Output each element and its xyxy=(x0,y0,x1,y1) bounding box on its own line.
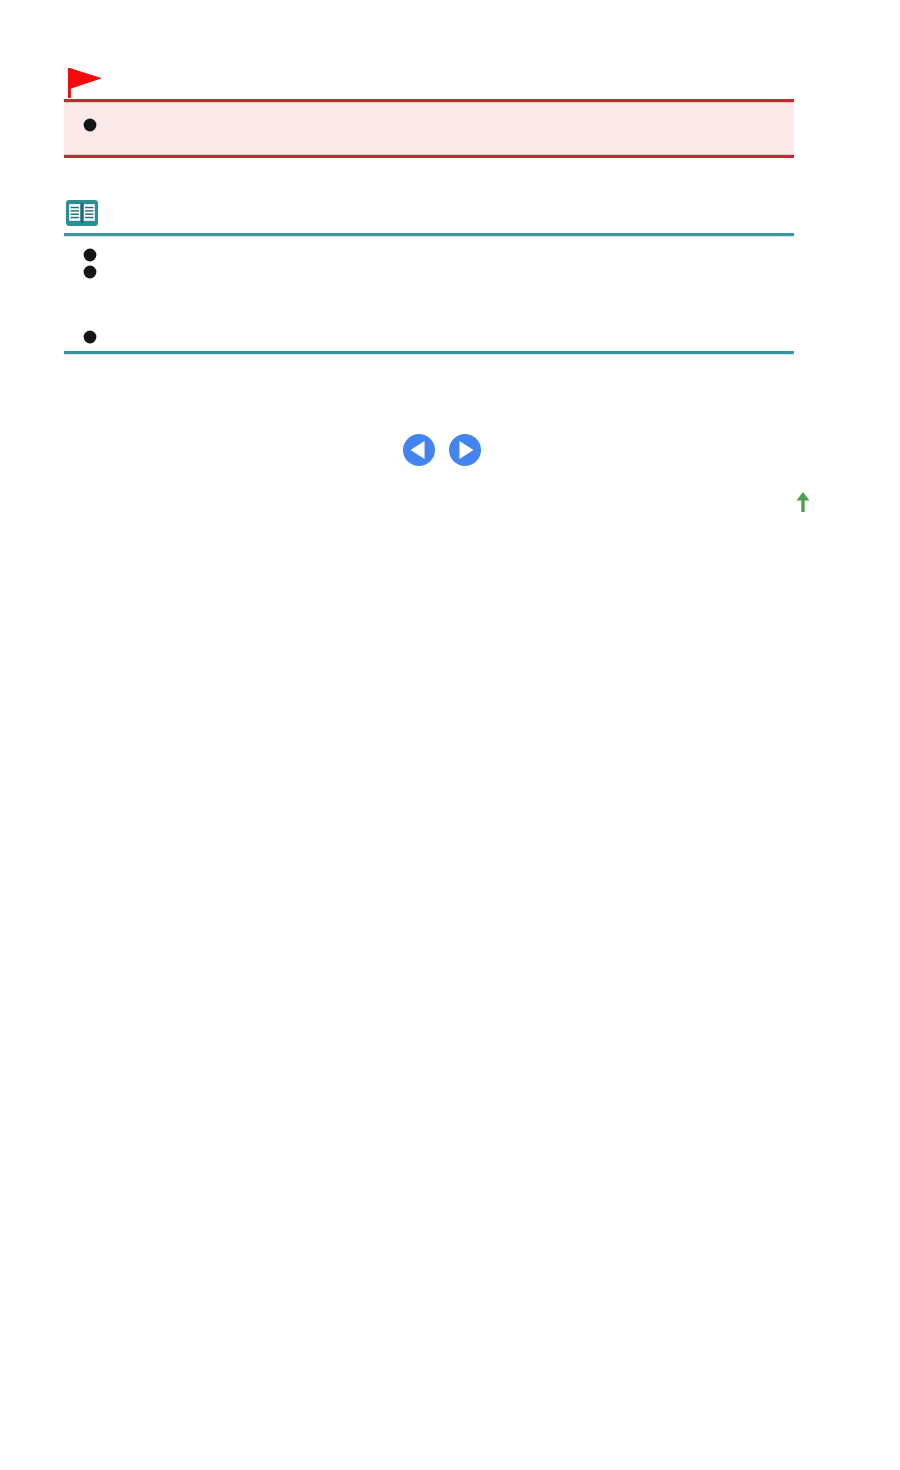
button[interactable]: Important notice xyxy=(64,66,794,160)
button[interactable]: Previous page xyxy=(402,433,436,467)
button[interactable]: Note xyxy=(64,198,794,356)
button[interactable]: Next page xyxy=(448,433,482,467)
button[interactable]: Back to top xyxy=(793,490,813,516)
